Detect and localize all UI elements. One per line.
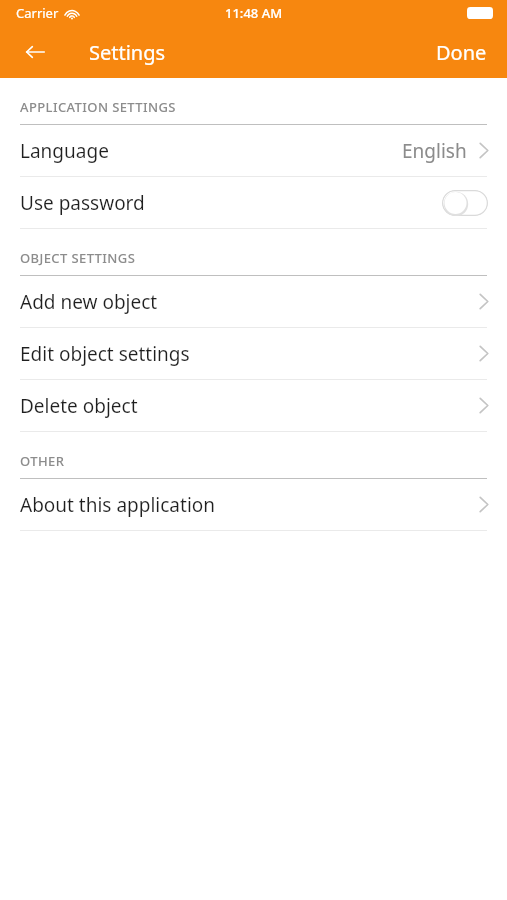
button[interactable]: Back bbox=[14, 31, 56, 73]
staticText: Language bbox=[20, 138, 109, 164]
staticText: Delete object bbox=[20, 393, 138, 419]
staticText: Done bbox=[436, 39, 487, 66]
staticText: Add new object bbox=[20, 289, 158, 315]
staticText: English bbox=[402, 138, 467, 164]
button[interactable]: About this application bbox=[0, 479, 507, 530]
staticText: 11:48 AM bbox=[225, 4, 283, 22]
staticText: OBJECT SETTINGS bbox=[20, 249, 136, 267]
staticText: About this application bbox=[20, 492, 216, 518]
button[interactable]: Language bbox=[0, 125, 507, 176]
button[interactable]: Add new object bbox=[0, 276, 507, 327]
staticText: Carrier bbox=[16, 4, 59, 22]
button[interactable]: Edit object settings bbox=[0, 328, 507, 379]
button[interactable]: Delete object bbox=[0, 380, 507, 431]
button[interactable]: Done bbox=[426, 31, 497, 74]
staticText: Edit object settings bbox=[20, 341, 190, 367]
staticText: Settings bbox=[89, 39, 166, 66]
staticText: Use password bbox=[20, 190, 145, 216]
button[interactable]: Use password bbox=[0, 177, 507, 228]
staticText: OTHER bbox=[20, 452, 65, 470]
staticText: APPLICATION SETTINGS bbox=[20, 98, 176, 116]
